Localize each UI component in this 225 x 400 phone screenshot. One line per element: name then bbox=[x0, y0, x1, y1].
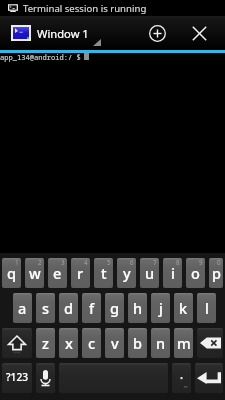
button[interactable]: j bbox=[151, 293, 170, 323]
staticText: j bbox=[159, 298, 163, 318]
staticText: o bbox=[191, 263, 200, 283]
staticText: n bbox=[156, 333, 166, 353]
button[interactable] bbox=[172, 363, 191, 393]
staticText: p bbox=[212, 263, 221, 283]
staticText: x bbox=[65, 333, 73, 353]
staticText: e bbox=[53, 263, 62, 283]
staticText: 6 bbox=[130, 258, 134, 266]
staticText: a bbox=[18, 298, 27, 318]
button[interactable]: Space bbox=[59, 363, 168, 393]
button[interactable]: p bbox=[209, 258, 223, 288]
button[interactable]: o bbox=[186, 258, 205, 288]
staticText: m bbox=[177, 333, 191, 353]
button[interactable]: t bbox=[94, 258, 113, 288]
button[interactable]: Backspace bbox=[197, 328, 223, 358]
staticText: z bbox=[42, 333, 49, 353]
button[interactable]: s bbox=[36, 293, 55, 323]
button[interactable]: New window bbox=[136, 16, 178, 50]
staticText: app_134@android:/ $ bbox=[0, 52, 86, 62]
staticText: b bbox=[133, 333, 142, 353]
staticText: s bbox=[42, 298, 50, 318]
button[interactable]: ?123 bbox=[2, 363, 32, 393]
staticText: y bbox=[123, 263, 131, 283]
staticText: h bbox=[133, 298, 143, 318]
staticText: 0 bbox=[217, 258, 221, 266]
button[interactable]: l bbox=[197, 293, 216, 323]
staticText: 3 bbox=[61, 258, 65, 266]
button[interactable]: Voice input bbox=[36, 363, 55, 393]
button[interactable]: Enter bbox=[195, 363, 223, 393]
staticText: i bbox=[171, 263, 175, 283]
staticText: f bbox=[89, 298, 95, 318]
staticText: w bbox=[29, 263, 41, 283]
staticText: t bbox=[101, 263, 107, 283]
staticText: k bbox=[179, 298, 188, 318]
button[interactable]: a bbox=[13, 293, 32, 323]
button[interactable]: v bbox=[105, 328, 124, 358]
button[interactable]: u bbox=[140, 258, 159, 288]
button[interactable]: e bbox=[48, 258, 67, 288]
button[interactable]: x bbox=[59, 328, 78, 358]
button[interactable]: d bbox=[59, 293, 78, 323]
staticText: ?123 bbox=[6, 370, 29, 384]
button[interactable]: i bbox=[163, 258, 182, 288]
button[interactable]: Shift bbox=[2, 328, 32, 358]
staticText: 9 bbox=[199, 258, 203, 266]
button[interactable]: Close window bbox=[178, 16, 220, 50]
staticText: c bbox=[88, 333, 96, 353]
button[interactable]: z bbox=[36, 328, 55, 358]
button[interactable]: k bbox=[174, 293, 193, 323]
button[interactable]: r bbox=[71, 258, 90, 288]
button[interactable]: Window 1 bbox=[0, 16, 102, 50]
button[interactable]: n bbox=[151, 328, 170, 358]
staticText: u bbox=[145, 263, 155, 283]
button[interactable]: q bbox=[2, 258, 21, 288]
staticText: l bbox=[205, 298, 209, 318]
staticText: 1 bbox=[15, 258, 19, 266]
staticText: 5 bbox=[107, 258, 111, 266]
staticText: r bbox=[77, 263, 84, 283]
staticText: 2 bbox=[38, 258, 42, 266]
staticText: Window 1 bbox=[37, 26, 89, 41]
button[interactable]: w bbox=[25, 258, 44, 288]
staticText: v bbox=[111, 333, 119, 353]
staticText: q bbox=[7, 263, 16, 283]
staticText: 8 bbox=[176, 258, 180, 266]
button[interactable]: f bbox=[82, 293, 101, 323]
button[interactable]: y bbox=[117, 258, 136, 288]
button[interactable]: m bbox=[174, 328, 193, 358]
staticText: d bbox=[64, 298, 73, 318]
button[interactable]: g bbox=[105, 293, 124, 323]
staticText: Terminal session is running bbox=[23, 2, 147, 15]
staticText: 4 bbox=[84, 258, 88, 266]
button[interactable]: c bbox=[82, 328, 101, 358]
button[interactable]: b bbox=[128, 328, 147, 358]
staticText: 7 bbox=[153, 258, 157, 266]
staticText: g bbox=[110, 298, 119, 318]
button[interactable]: h bbox=[128, 293, 147, 323]
